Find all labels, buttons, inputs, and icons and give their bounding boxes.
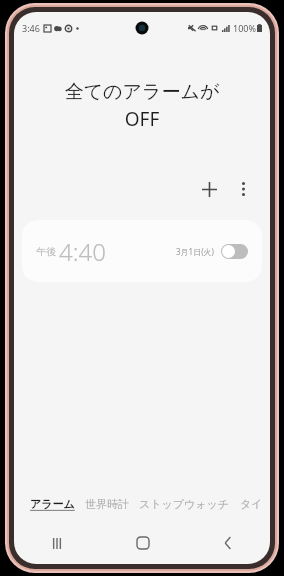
staticText: 3月1日(火) (176, 246, 214, 257)
button[interactable]: 世界時計 (85, 494, 129, 514)
staticText: ストップウォッチ (139, 497, 230, 511)
button[interactable]: More options (228, 174, 258, 204)
staticText: 世界時計 (85, 497, 129, 511)
button[interactable]: Alarm toggle off (221, 244, 248, 259)
staticText: 4:40 (59, 235, 106, 268)
staticText: 全てのアラームが OFF (14, 80, 270, 132)
button[interactable]: Add alarm (192, 172, 226, 206)
button[interactable]: Recents (14, 528, 100, 558)
staticText: タイ (240, 497, 263, 511)
staticText: アラーム (30, 497, 75, 511)
button[interactable]: ストップウォッチ (139, 494, 230, 514)
button[interactable]: 午後 (22, 220, 262, 282)
staticText: 3:46 (22, 22, 40, 34)
staticText: 午後 (36, 245, 56, 258)
button[interactable]: タイ (240, 494, 263, 514)
staticText: 100% (233, 22, 256, 34)
button[interactable]: Back (185, 528, 270, 558)
button[interactable]: アラーム (30, 494, 75, 514)
button[interactable]: Home (100, 528, 185, 558)
